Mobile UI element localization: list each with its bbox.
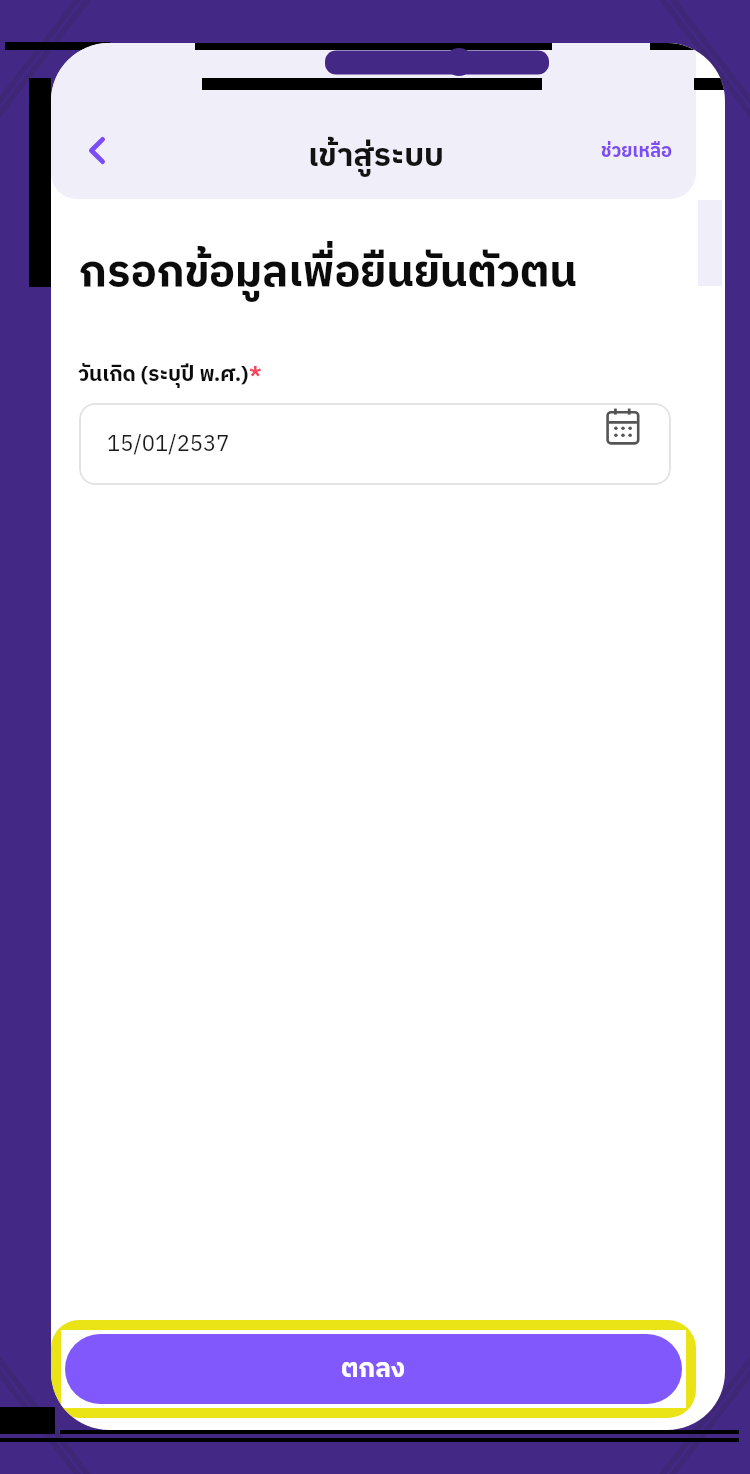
staticText: กรอกข้อมูลเพื่อยืนยันตัวตน xyxy=(79,237,577,309)
staticText: * xyxy=(249,358,262,393)
button[interactable]: ตกลง xyxy=(65,1334,682,1404)
button[interactable]: Back xyxy=(65,118,129,182)
staticText: วันเกิด (ระบุปี พ.ศ.) xyxy=(78,358,249,393)
staticText: 15/01/2537 xyxy=(107,426,230,462)
staticText: เข้าสู่ระบบ xyxy=(308,130,444,183)
button[interactable]: ช่วยเหลือ xyxy=(586,124,688,179)
staticText: ตกลง xyxy=(341,1348,406,1391)
staticText: ช่วยเหลือ xyxy=(601,136,673,167)
button[interactable]: 15/01/2537 xyxy=(79,403,671,485)
